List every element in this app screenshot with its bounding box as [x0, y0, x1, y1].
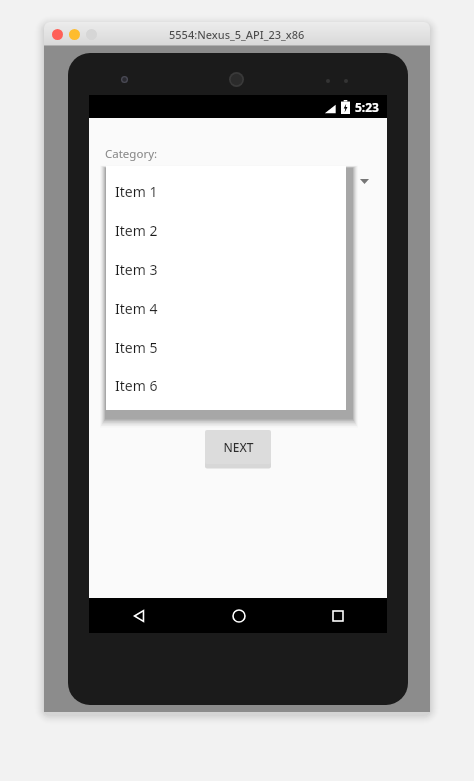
button[interactable]: Item 1: [106, 172, 346, 211]
staticText: NEXT: [223, 439, 254, 455]
staticText: 5554:Nexus_5_API_23_x86: [169, 27, 305, 42]
staticText: Item 1: [115, 182, 158, 201]
button[interactable]: Item 3: [106, 250, 346, 289]
staticText: Item 6: [115, 376, 158, 395]
button[interactable]: Item 5: [106, 328, 346, 367]
staticText: Item 5: [115, 338, 158, 357]
staticText: 5:23: [355, 99, 379, 115]
button[interactable]: Recent apps: [288, 598, 387, 633]
button[interactable]: Minimize: [69, 29, 80, 40]
button[interactable]: Item 4: [106, 289, 346, 328]
button[interactable]: Close: [52, 29, 63, 40]
button[interactable]: Item 6: [106, 367, 346, 404]
staticText: Item 2: [115, 221, 158, 240]
staticText: Category:: [105, 146, 158, 162]
button[interactable]: Home: [189, 598, 288, 633]
staticText: Item 3: [115, 260, 158, 279]
button[interactable]: Open category spinner: [351, 168, 377, 194]
button[interactable]: Item 2: [106, 211, 346, 250]
button[interactable]: NEXT: [205, 430, 271, 464]
staticText: Item 4: [115, 299, 158, 318]
button[interactable]: Zoom: [86, 29, 97, 40]
button[interactable]: Back: [89, 598, 189, 633]
